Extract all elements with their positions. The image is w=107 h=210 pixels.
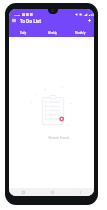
button[interactable]: Daily [9,29,38,36]
button[interactable]: Add task [86,17,93,24]
button[interactable]: Home [38,188,66,196]
staticText: 13:37 [14,13,21,16]
staticText: Daily [20,31,27,35]
staticText: Monthly [75,31,86,35]
staticText: To Do List [20,18,42,24]
button[interactable]: Back [66,188,94,196]
button[interactable]: Open navigation menu [10,17,17,24]
staticText: No task Found. [48,136,70,140]
staticText: Weekly [48,31,57,35]
button[interactable]: Weekly [38,29,66,36]
button[interactable]: Recent apps [9,188,38,196]
button[interactable]: Monthly [66,29,94,36]
